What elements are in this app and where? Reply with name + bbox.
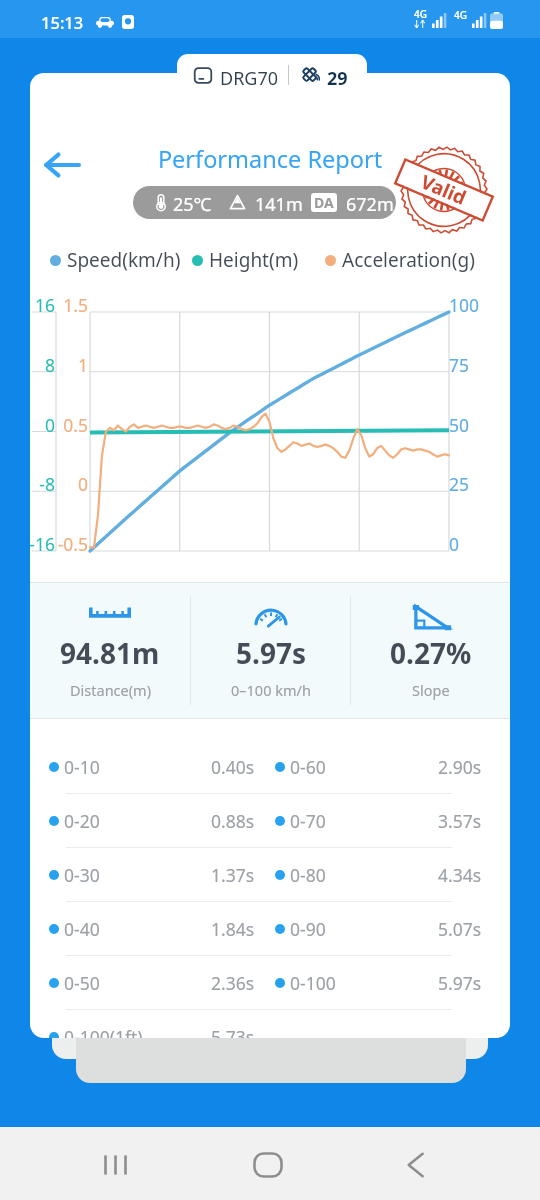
staticText: 94.81m xyxy=(60,634,160,672)
staticText: 0-100(1ft) xyxy=(64,1025,143,1038)
staticText: 25℃ xyxy=(173,192,212,217)
staticText: 0-30 xyxy=(64,863,100,887)
staticText: 0 xyxy=(449,532,495,556)
button[interactable]: 0-20 xyxy=(30,794,510,848)
staticText: 1 xyxy=(56,353,88,377)
staticText: 672m xyxy=(346,192,394,217)
staticText: 1.5 xyxy=(56,293,88,317)
button[interactable]: 25℃ xyxy=(133,186,396,219)
staticText: 8 xyxy=(30,353,55,377)
staticText: 0-80 xyxy=(290,863,326,887)
staticText: Acceleration(g) xyxy=(342,247,475,273)
staticText: 4G xyxy=(454,8,467,22)
staticText: 0-70 xyxy=(290,809,326,833)
staticText: 0.40s xyxy=(211,755,255,779)
staticText: 0.27% xyxy=(390,634,472,672)
staticText: -8 xyxy=(30,472,55,496)
button[interactable]: 0-30 xyxy=(30,848,510,902)
staticText: 0-50 xyxy=(64,971,100,995)
staticText: 0-90 xyxy=(290,917,326,941)
staticText: 50 xyxy=(449,413,495,437)
staticText: 5.07s xyxy=(438,917,482,941)
staticText: 4G xyxy=(414,7,427,21)
staticText: Speed(km/h) xyxy=(67,247,181,273)
staticText: 4.34s xyxy=(438,863,482,887)
button[interactable]: 0-10 xyxy=(30,740,510,794)
button[interactable]: 0-100(1ft) xyxy=(30,1010,510,1038)
staticText: DA xyxy=(314,193,334,212)
staticText: 1.37s xyxy=(211,863,255,887)
staticText: 100 xyxy=(449,293,495,317)
staticText: Slope xyxy=(412,680,450,700)
staticText: 0.88s xyxy=(211,809,255,833)
button[interactable]: 94.81m xyxy=(30,583,190,718)
staticText: 0.5 xyxy=(56,413,88,437)
staticText: 0 xyxy=(30,413,55,437)
staticText: 0-60 xyxy=(290,755,326,779)
staticText: 75 xyxy=(449,353,495,377)
button[interactable]: Home xyxy=(240,1137,296,1193)
button[interactable]: Recent apps xyxy=(87,1137,143,1193)
staticText: 29 xyxy=(327,66,348,91)
staticText: Height(m) xyxy=(209,247,299,273)
staticText: 2.90s xyxy=(438,755,482,779)
staticText: 16 xyxy=(30,293,55,317)
staticText: Performance Report xyxy=(30,143,510,175)
button[interactable]: DRG70 xyxy=(177,54,367,96)
staticText: 141m xyxy=(255,192,303,217)
staticText: Valid xyxy=(417,168,470,211)
button[interactable]: 0-40 xyxy=(30,902,510,956)
button[interactable]: Back xyxy=(387,1137,443,1193)
button[interactable]: 0-50 xyxy=(30,956,510,1010)
staticText: 0–100 km/h xyxy=(231,680,311,700)
staticText: Distance(m) xyxy=(70,680,151,700)
staticText: 1.84s xyxy=(211,917,255,941)
staticText: 0-10 xyxy=(64,755,100,779)
staticText: 0 xyxy=(56,472,88,496)
staticText: 5.73s xyxy=(211,1025,255,1038)
staticText: 15:13 xyxy=(41,11,84,33)
staticText: 5.97s xyxy=(438,971,482,995)
staticText: 3.57s xyxy=(438,809,482,833)
button[interactable]: 0.27% xyxy=(351,583,510,718)
button[interactable]: 5.97s xyxy=(191,583,350,718)
staticText: 5.97s xyxy=(236,634,306,672)
staticText: -16 xyxy=(30,532,55,556)
staticText: DRG70 xyxy=(220,66,279,91)
staticText: 0-20 xyxy=(64,809,100,833)
staticText: -0.5 xyxy=(56,532,88,556)
button[interactable]: Back xyxy=(38,141,86,189)
staticText: 2.36s xyxy=(211,971,255,995)
staticText: 25 xyxy=(449,472,495,496)
staticText: 0-100 xyxy=(290,971,336,995)
staticText: 0-40 xyxy=(64,917,100,941)
